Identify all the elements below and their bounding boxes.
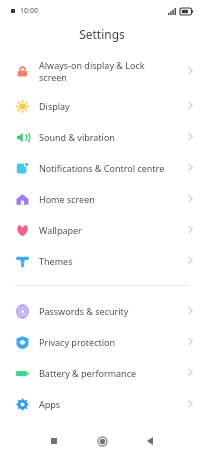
button[interactable]: Back bbox=[142, 433, 158, 449]
staticText: Passwords & security bbox=[39, 305, 129, 317]
button[interactable]: Notifications & Control centre bbox=[0, 152, 204, 183]
staticText: Themes bbox=[39, 255, 73, 267]
staticText: Battery & performance bbox=[39, 367, 137, 379]
button[interactable]: Wallpaper bbox=[0, 214, 204, 245]
button[interactable]: Display bbox=[0, 90, 204, 121]
staticText: Settings bbox=[79, 26, 125, 42]
button[interactable]: Always-on display & Lock bbox=[0, 51, 204, 90]
staticText: Privacy protection bbox=[39, 336, 116, 348]
button[interactable]: Additional settings bbox=[0, 419, 204, 450]
button[interactable]: Recents bbox=[46, 433, 62, 449]
staticText: Additional settings bbox=[39, 429, 119, 441]
staticText: Sound & vibration bbox=[39, 131, 115, 143]
button[interactable]: Battery & performance bbox=[0, 357, 204, 388]
button[interactable]: Passwords & security bbox=[0, 295, 204, 326]
button[interactable]: Sound & vibration bbox=[0, 121, 204, 152]
staticText: Home screen bbox=[39, 193, 95, 205]
button[interactable]: Home screen bbox=[0, 183, 204, 214]
button[interactable]: Apps bbox=[0, 388, 204, 419]
staticText: Wallpaper bbox=[39, 224, 82, 236]
staticText: 10:00 bbox=[20, 6, 38, 16]
staticText: Apps bbox=[39, 398, 61, 410]
staticText: screen bbox=[39, 71, 67, 83]
staticText: Display bbox=[39, 100, 70, 112]
button[interactable]: Home bbox=[94, 433, 110, 449]
button[interactable]: Privacy protection bbox=[0, 326, 204, 357]
staticText: Notifications & Control centre bbox=[39, 162, 165, 174]
button[interactable]: Themes bbox=[0, 245, 204, 276]
staticText: Always-on display & Lock bbox=[39, 59, 145, 71]
